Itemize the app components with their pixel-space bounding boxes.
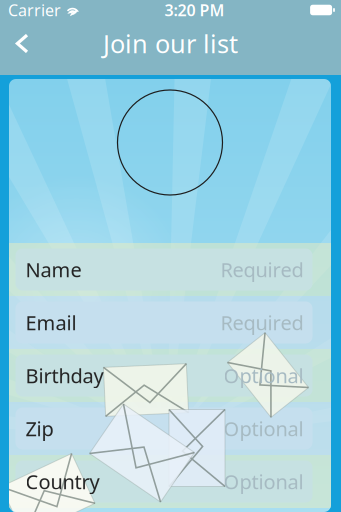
staticText: Required [220,256,303,283]
button[interactable]: Back [0,20,44,67]
button[interactable]: Email [2,296,337,349]
staticText: Zip [25,415,53,442]
staticText: Name [25,256,81,283]
button[interactable]: Zip [2,402,337,455]
staticText: 3:20 PM [164,0,224,21]
staticText: Join our list [103,27,238,60]
staticText: Optional [223,468,303,495]
button[interactable]: Birthday [2,349,337,402]
staticText: Optional [223,362,303,389]
staticText: Carrier [8,0,61,21]
staticText: Required [220,309,303,336]
staticText: Birthday [25,362,103,389]
staticText: Email [25,309,76,336]
button[interactable]: Country [2,455,337,508]
staticText: Country [25,468,99,495]
staticText: Optional [223,415,303,442]
button[interactable]: Name [2,243,337,296]
